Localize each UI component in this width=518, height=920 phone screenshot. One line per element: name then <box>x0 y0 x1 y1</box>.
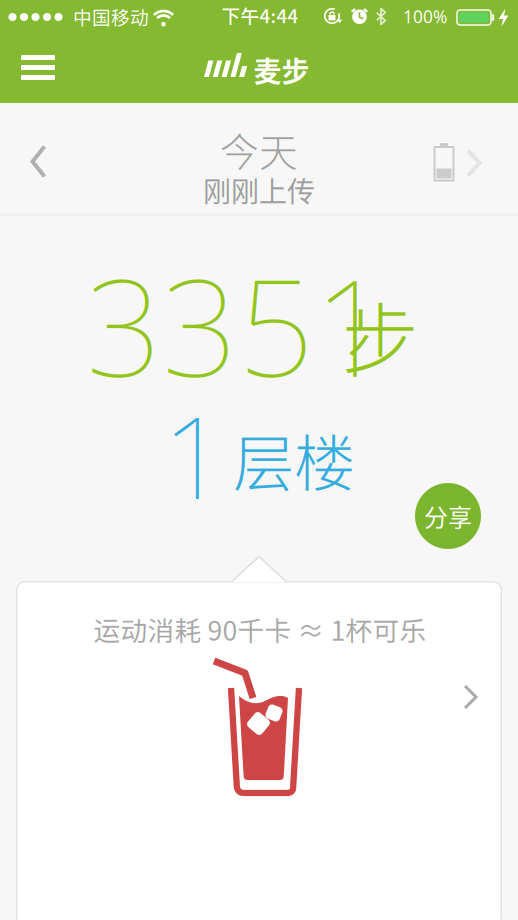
staticText: 下午4:44 <box>221 1 298 28</box>
button[interactable]: Menu <box>13 45 63 89</box>
staticText: 中国移动 <box>73 3 149 30</box>
staticText: 100% <box>403 5 447 28</box>
staticText: 今天 <box>220 121 298 177</box>
button[interactable]: Next day <box>0 0 518 920</box>
staticText: 麦步 <box>253 50 309 90</box>
staticText: 层楼 <box>233 415 355 504</box>
staticText: 运动消耗 90千卡 ≈ 1杯可乐 <box>93 610 426 648</box>
staticText: 刚刚上传 <box>203 170 315 210</box>
staticText: 3351 <box>86 236 390 414</box>
staticText: 分享 <box>424 499 472 533</box>
button[interactable]: Previous day <box>0 0 518 920</box>
staticText: 1 <box>162 380 227 530</box>
button[interactable]: 运动消耗 90千卡 ≈ 1杯可乐 <box>16 581 502 920</box>
button[interactable]: 分享 <box>415 483 481 549</box>
staticText: 步 <box>341 278 418 390</box>
